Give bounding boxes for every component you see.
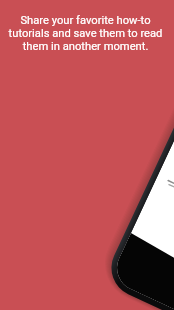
- button[interactable]: Phone preview illustration: [0, 0, 174, 310]
- staticText: Share your favorite how-to tutorials and…: [5, 14, 166, 53]
- other: Phone preview illustration: [0, 0, 174, 310]
